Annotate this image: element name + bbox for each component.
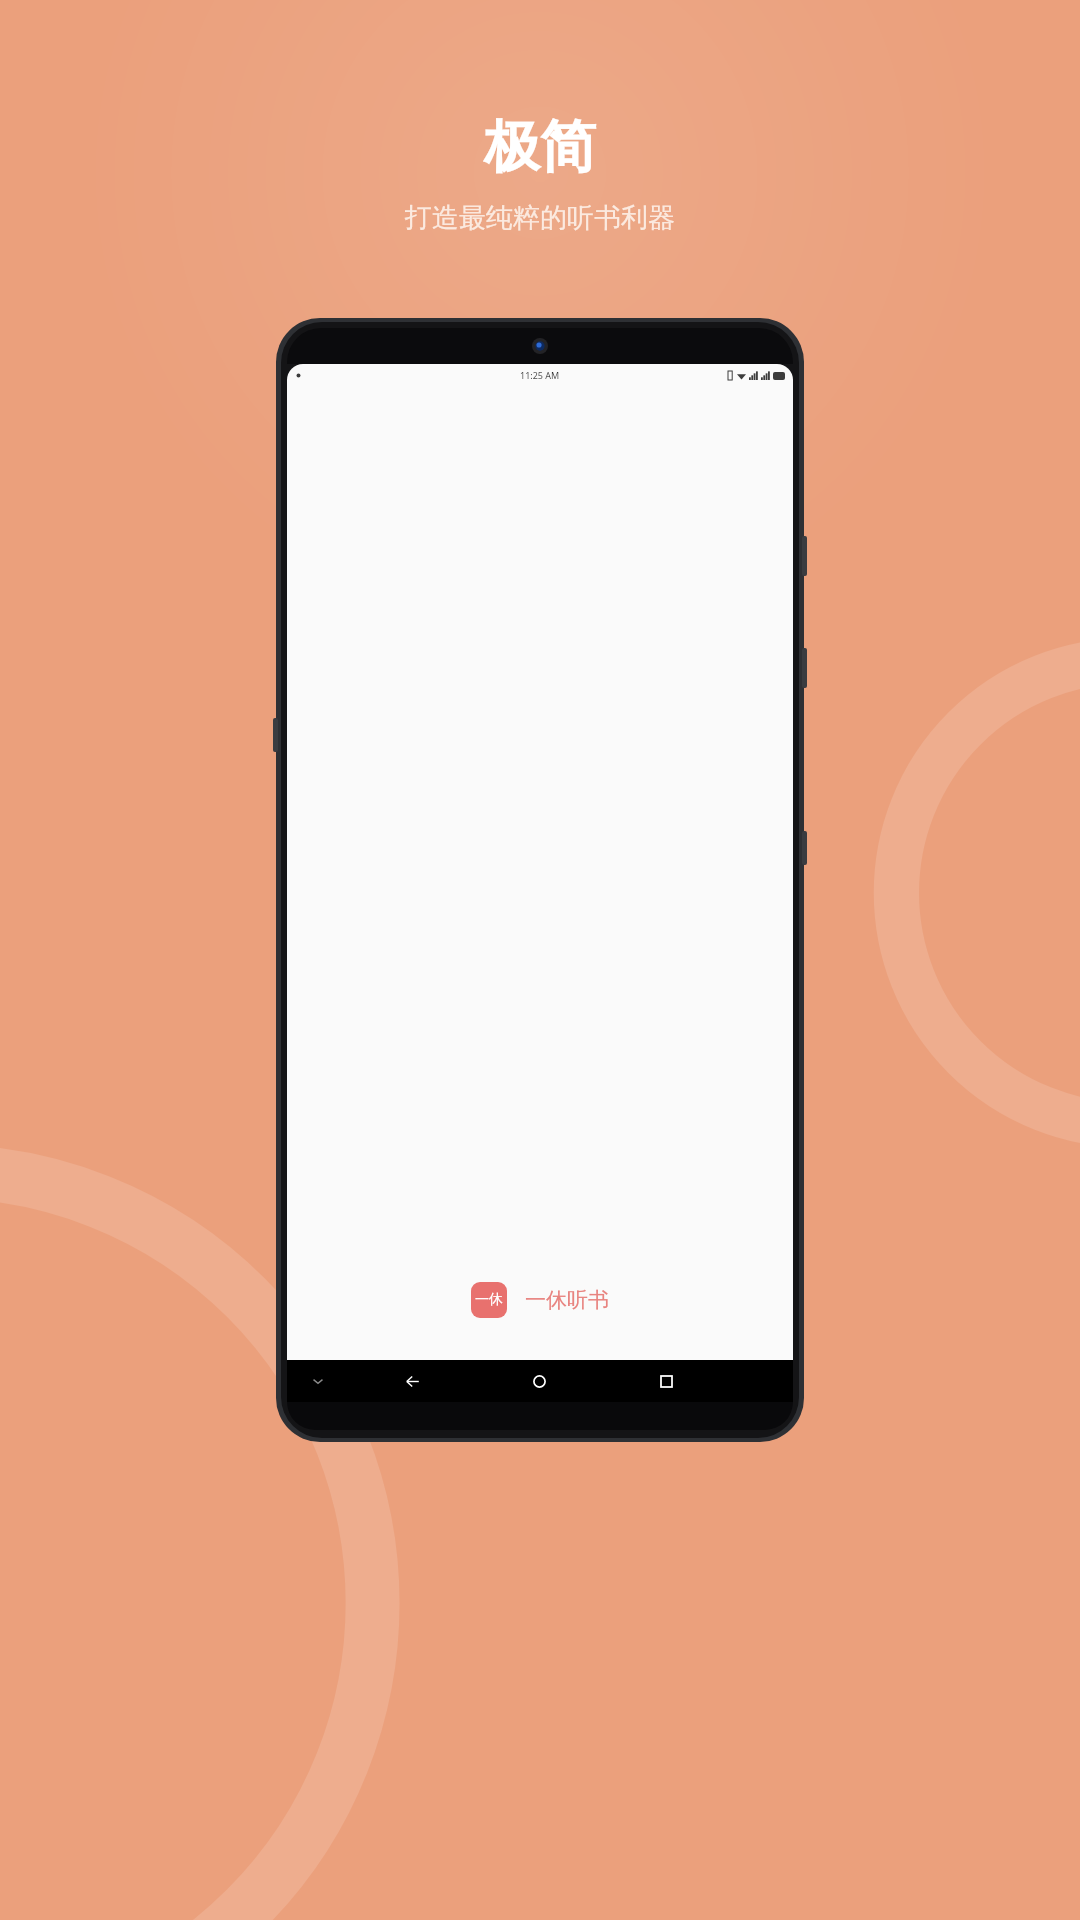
staticText: 11:25 AM xyxy=(520,369,560,381)
staticText: 一休 xyxy=(475,1291,503,1309)
button[interactable]: Back xyxy=(349,1360,476,1402)
staticText: 一休听书 xyxy=(525,1287,609,1313)
button[interactable]: Recents xyxy=(603,1360,730,1402)
button[interactable]: Hide keyboard xyxy=(287,1360,349,1402)
button[interactable]: Home xyxy=(476,1360,603,1402)
button[interactable]: 一休 xyxy=(463,1276,617,1324)
staticText: 打造最纯粹的听书利器 xyxy=(405,201,675,235)
staticText: 极简 xyxy=(484,112,596,183)
